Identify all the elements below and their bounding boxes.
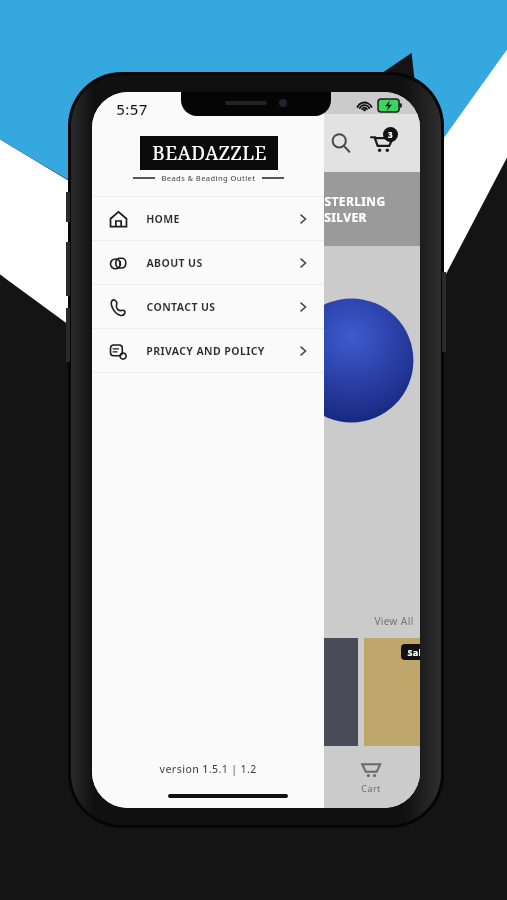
staticText: Beads & Beading Outlet: [161, 173, 256, 183]
staticText: ABOUT US: [146, 256, 203, 270]
button[interactable]: ABOUT US: [92, 241, 324, 284]
button[interactable]: HOME: [92, 197, 324, 240]
staticText: View All: [374, 614, 414, 628]
staticText: STERLING: [324, 193, 386, 209]
staticText: CONTACT US: [146, 300, 216, 314]
staticText: 5:57: [116, 99, 148, 119]
staticText: HOME: [146, 212, 180, 226]
staticText: Cart: [361, 782, 381, 794]
staticText: version 1.5.1 | 1.2: [159, 762, 257, 776]
staticText: 3: [388, 129, 393, 140]
staticText: BEADAZZLE: [152, 140, 267, 166]
button[interactable]: CONTACT US: [92, 285, 324, 328]
staticText: PRIVACY AND POLICY: [146, 344, 265, 358]
staticText: Sal: [407, 646, 420, 658]
button[interactable]: PRIVACY AND POLICY: [92, 329, 324, 372]
staticText: SILVER: [324, 209, 367, 225]
